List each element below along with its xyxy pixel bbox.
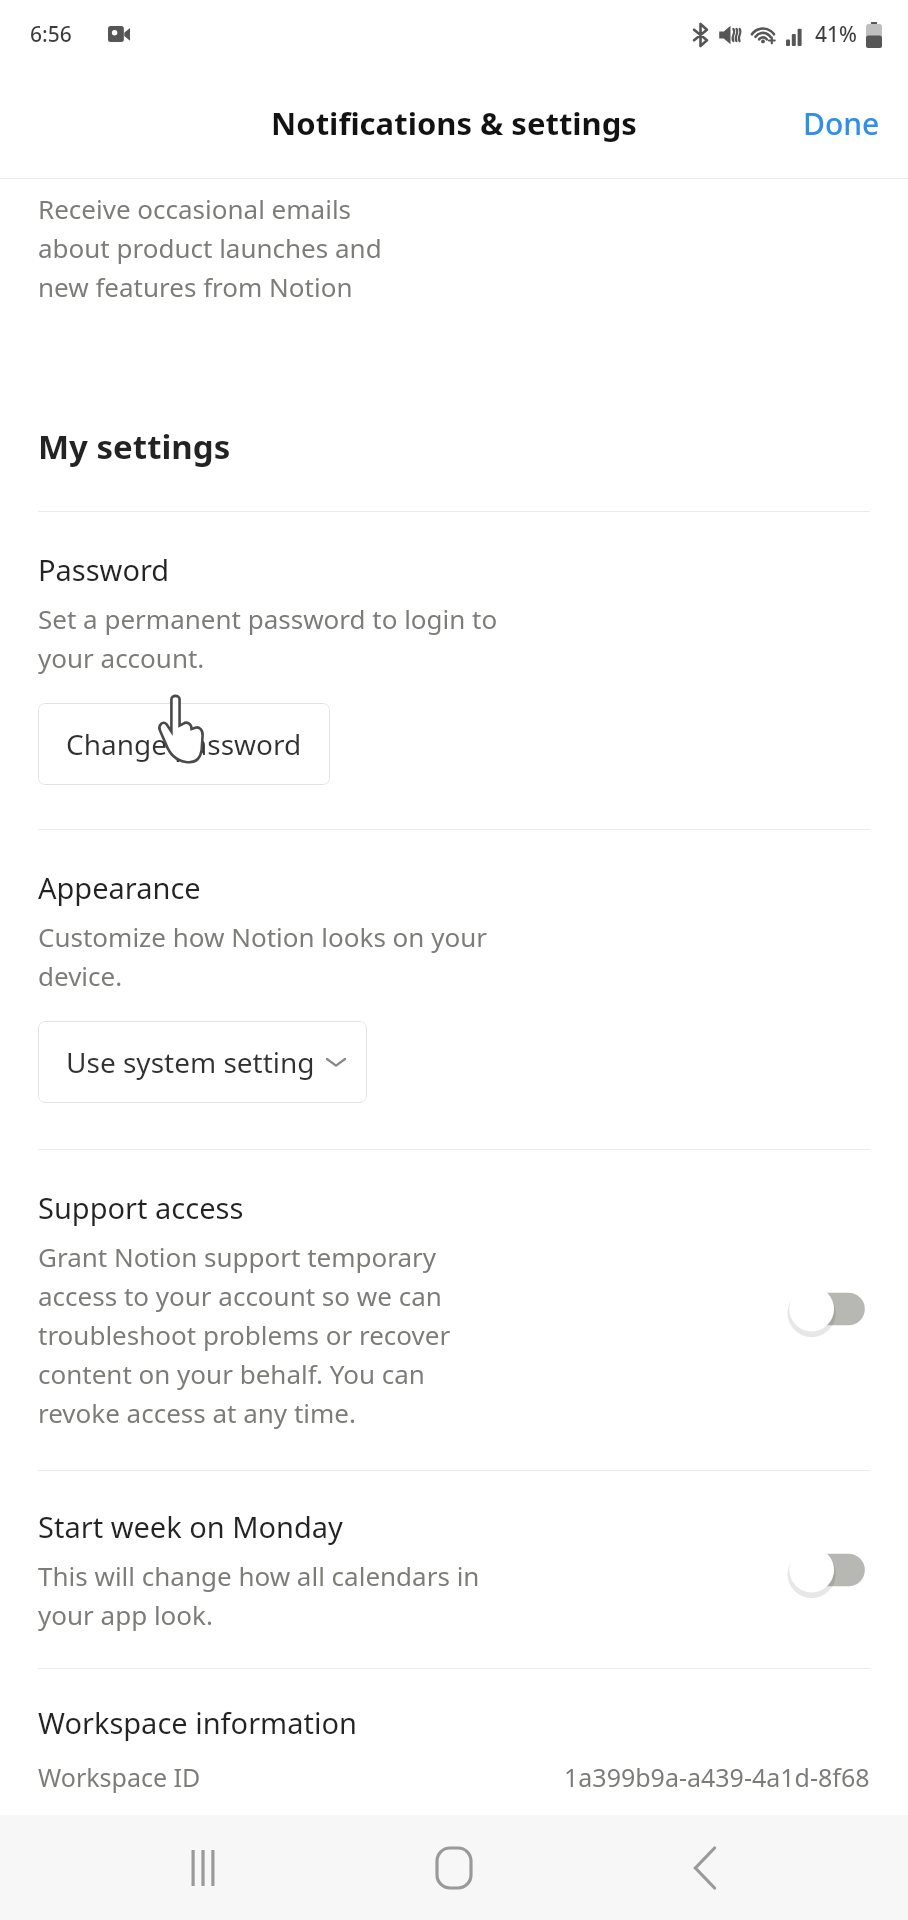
button[interactable]: Home <box>406 1820 502 1916</box>
staticText: Set a permanent password to login to you… <box>38 601 498 675</box>
button[interactable]: Toggle <box>784 1281 870 1337</box>
staticText: Notifications & settings <box>271 102 637 144</box>
button[interactable]: Use system setting <box>38 1021 367 1103</box>
staticText: Receive occasional emails about product … <box>38 191 870 304</box>
button[interactable]: Recents <box>155 1820 251 1916</box>
button[interactable]: Done <box>775 85 908 162</box>
staticText: Use system setting <box>66 1043 315 1081</box>
staticText: Support access <box>38 1188 244 1227</box>
staticText: 1a399b9a-a439-4a1d-8f68 <box>564 1760 870 1794</box>
staticText: 41% <box>815 20 857 49</box>
staticText: Password <box>38 550 170 589</box>
staticText: Workspace ID <box>38 1760 564 1794</box>
button[interactable]: Back <box>657 1820 753 1916</box>
staticText: 6:56 <box>30 20 72 49</box>
staticText: Appearance <box>38 868 201 907</box>
staticText: My settings <box>38 424 231 469</box>
button[interactable]: Start week on Monday <box>0 1507 908 1632</box>
staticText: Change password <box>66 725 302 763</box>
button[interactable]: Toggle <box>784 1542 870 1598</box>
button[interactable]: Change password <box>38 703 330 785</box>
staticText: Start week on Monday <box>38 1507 343 1546</box>
button[interactable]: Support access <box>0 1188 908 1430</box>
staticText: Grant Notion support temporary access to… <box>38 1239 451 1430</box>
staticText: Workspace information <box>38 1703 357 1742</box>
staticText: This will change how all calendars in yo… <box>38 1558 480 1632</box>
staticText: Done <box>803 103 880 144</box>
staticText: Customize how Notion looks on your devic… <box>38 919 487 993</box>
